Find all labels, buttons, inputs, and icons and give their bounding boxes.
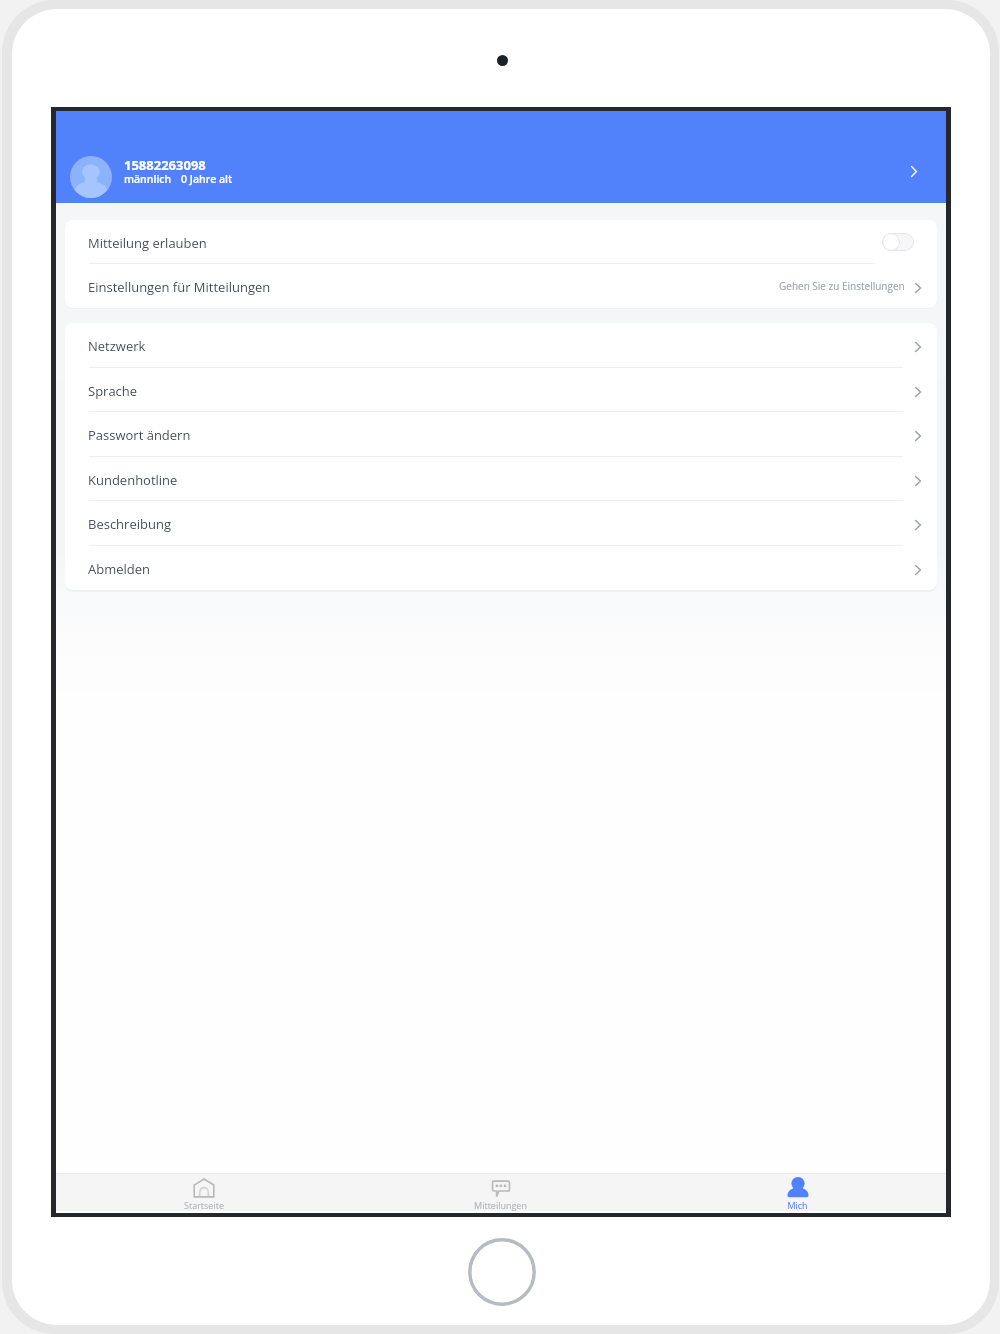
button[interactable]: Startseite: [56, 1174, 352, 1211]
button[interactable]: Mitteilungen: [352, 1174, 649, 1211]
staticText: Passwort ändern: [88, 426, 191, 444]
staticText: Mitteilungen: [474, 1199, 527, 1211]
button[interactable]: Mich: [649, 1174, 946, 1211]
button[interactable]: 15882263098: [56, 111, 946, 203]
button[interactable]: Kundenhotline: [65, 457, 937, 501]
staticText: 0 Jahre alt: [181, 172, 233, 186]
staticText: Gehen Sie zu Einstellungen: [779, 279, 905, 293]
button[interactable]: Passwort ändern: [65, 412, 937, 457]
staticText: Sprache: [88, 382, 138, 400]
staticText: Netzwerk: [88, 337, 146, 355]
staticText: 15882263098: [124, 156, 206, 174]
button[interactable]: Toggle notifications: [882, 233, 914, 251]
staticText: Einstellungen für Mitteilungen: [88, 278, 271, 296]
staticText: Startseite: [184, 1199, 224, 1211]
button[interactable]: Mitteilung erlauben: [65, 220, 937, 264]
staticText: Kundenhotline: [88, 471, 178, 489]
staticText: Mitteilung erlauben: [88, 234, 207, 252]
button[interactable]: Abmelden: [65, 546, 937, 590]
staticText: männlich: [124, 172, 172, 186]
button[interactable]: Beschreibung: [65, 501, 937, 546]
button[interactable]: Einstellungen für Mitteilungen: [65, 264, 937, 308]
button[interactable]: Sprache: [65, 368, 937, 412]
button[interactable]: Netzwerk: [65, 323, 937, 368]
staticText: Beschreibung: [88, 515, 171, 533]
staticText: Mich: [787, 1199, 808, 1211]
staticText: Abmelden: [88, 560, 151, 578]
